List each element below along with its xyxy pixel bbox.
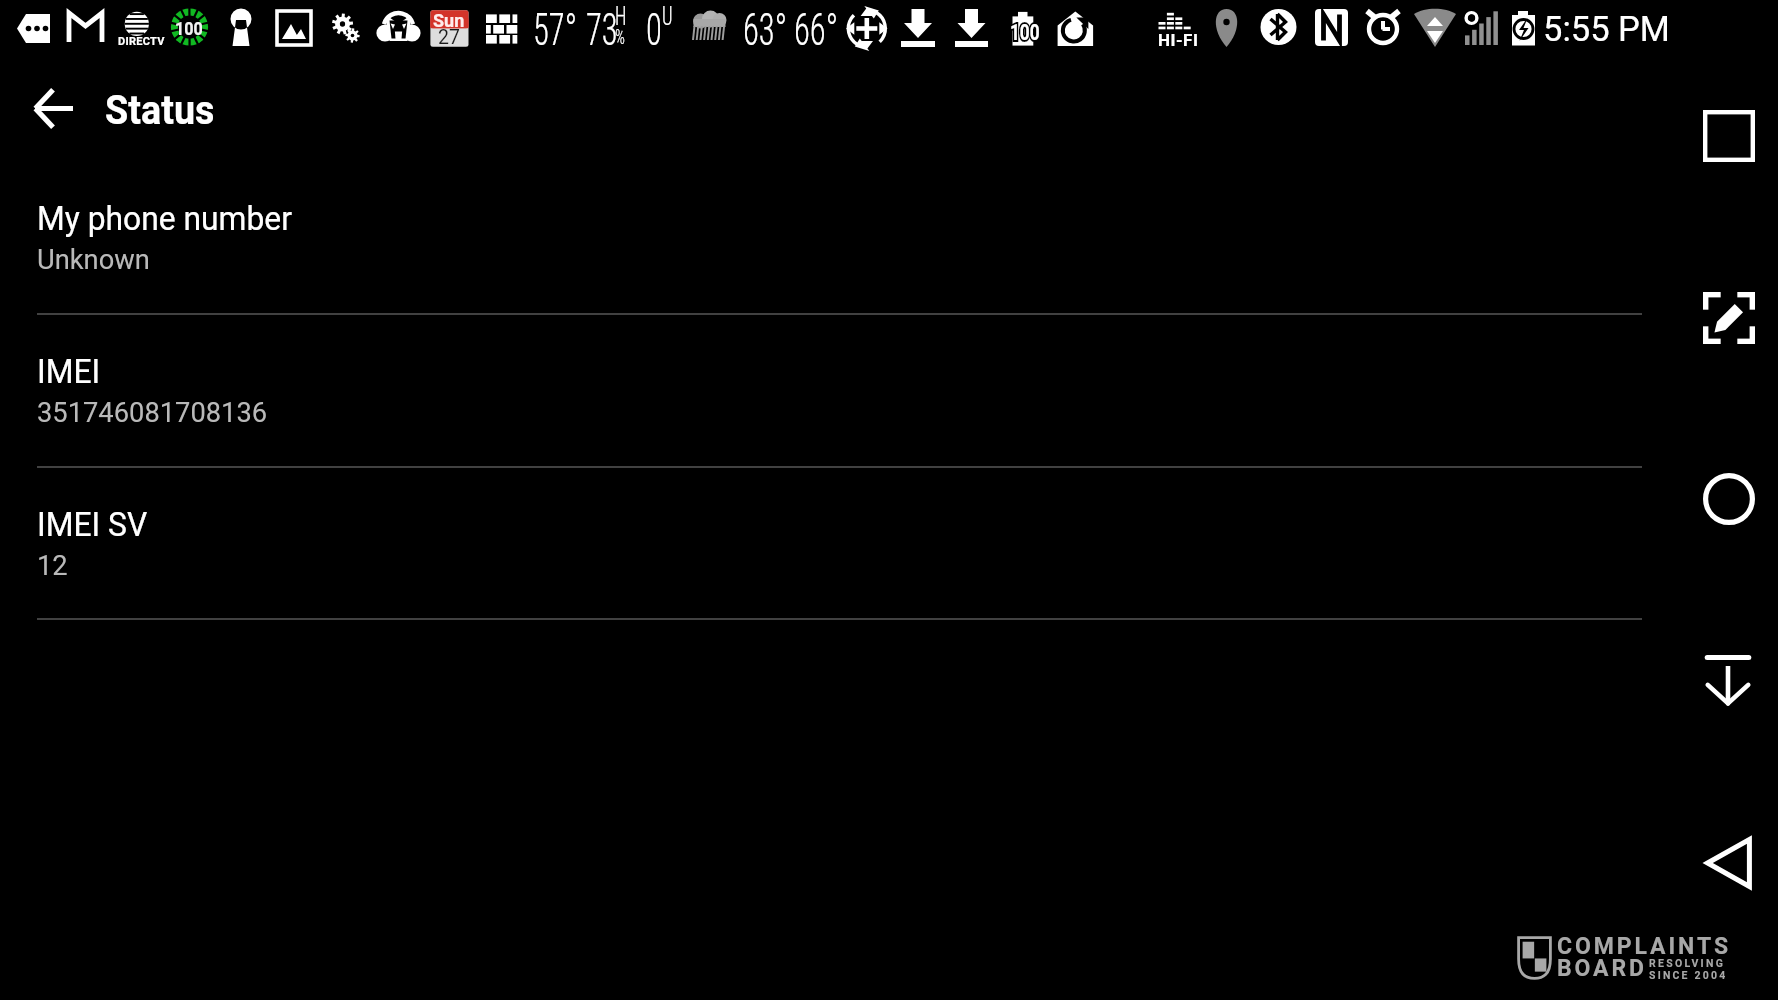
- button[interactable]: Home: [1691, 461, 1767, 537]
- staticText: 73: [586, 4, 618, 56]
- staticText: 57°: [533, 4, 577, 56]
- staticText: 351746081708136: [37, 396, 268, 429]
- button[interactable]: IMEI SV: [0, 484, 1778, 619]
- staticText: 100: [175, 17, 203, 39]
- staticText: 100: [1010, 20, 1040, 46]
- staticText: Sun: [433, 10, 465, 31]
- button[interactable]: Back: [15, 70, 91, 146]
- staticText: IMEI SV: [37, 505, 147, 544]
- staticText: SINCE 2004: [1649, 969, 1728, 981]
- staticText: 12: [37, 549, 68, 582]
- staticText: IMEI: [37, 352, 100, 391]
- staticText: 100: [1010, 20, 1040, 46]
- button[interactable]: Recents: [1691, 98, 1767, 174]
- staticText: COMPLAINTS: [1557, 933, 1731, 960]
- staticText: %: [615, 25, 625, 50]
- button[interactable]: IMEI: [0, 331, 1778, 467]
- button[interactable]: My phone number: [0, 178, 1778, 314]
- staticText: RESOLVING: [1649, 957, 1726, 969]
- staticText: My phone number: [37, 199, 293, 238]
- staticText: 0: [646, 4, 662, 56]
- staticText: 27: [438, 26, 460, 49]
- staticText: DIRECTV: [118, 35, 165, 48]
- staticText: Status: [105, 86, 214, 134]
- button[interactable]: Back: [1693, 825, 1764, 901]
- button[interactable]: Scroll down: [1693, 643, 1763, 718]
- staticText: 63°: [743, 4, 787, 56]
- staticText: 5:55 PM: [1543, 9, 1670, 49]
- staticText: HI-FI: [1158, 30, 1199, 50]
- staticText: H: [615, 2, 627, 31]
- staticText: 66°: [794, 4, 838, 56]
- staticText: Unknown: [37, 243, 150, 276]
- button[interactable]: Screenshot: [1691, 280, 1767, 356]
- staticText: BOARD: [1557, 955, 1647, 982]
- staticText: U: [662, 2, 673, 31]
